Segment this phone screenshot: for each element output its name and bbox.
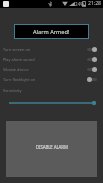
staticText: DISABLE ALARM: [36, 144, 68, 150]
button[interactable]: Vibrate device: [0, 64, 103, 74]
staticText: 24%: [75, 1, 85, 7]
button[interactable]: Turn screen on: [0, 44, 103, 54]
staticText: Turn screen on: [3, 47, 31, 52]
staticText: Sensitivity: [3, 88, 22, 93]
staticText: Play alarm sound: [3, 57, 35, 62]
staticText: 21:28: [88, 0, 102, 7]
staticText: Vibrate device: [3, 67, 29, 72]
button[interactable]: Turn flashlight on: [0, 74, 103, 84]
staticText: Turn flashlight on: [3, 77, 36, 82]
button[interactable]: Play alarm sound: [0, 54, 103, 64]
staticText: Alarm Armed!: [33, 28, 70, 36]
button[interactable]: DISABLE ALARM: [6, 121, 97, 177]
button[interactable]: [0, 97, 103, 109]
